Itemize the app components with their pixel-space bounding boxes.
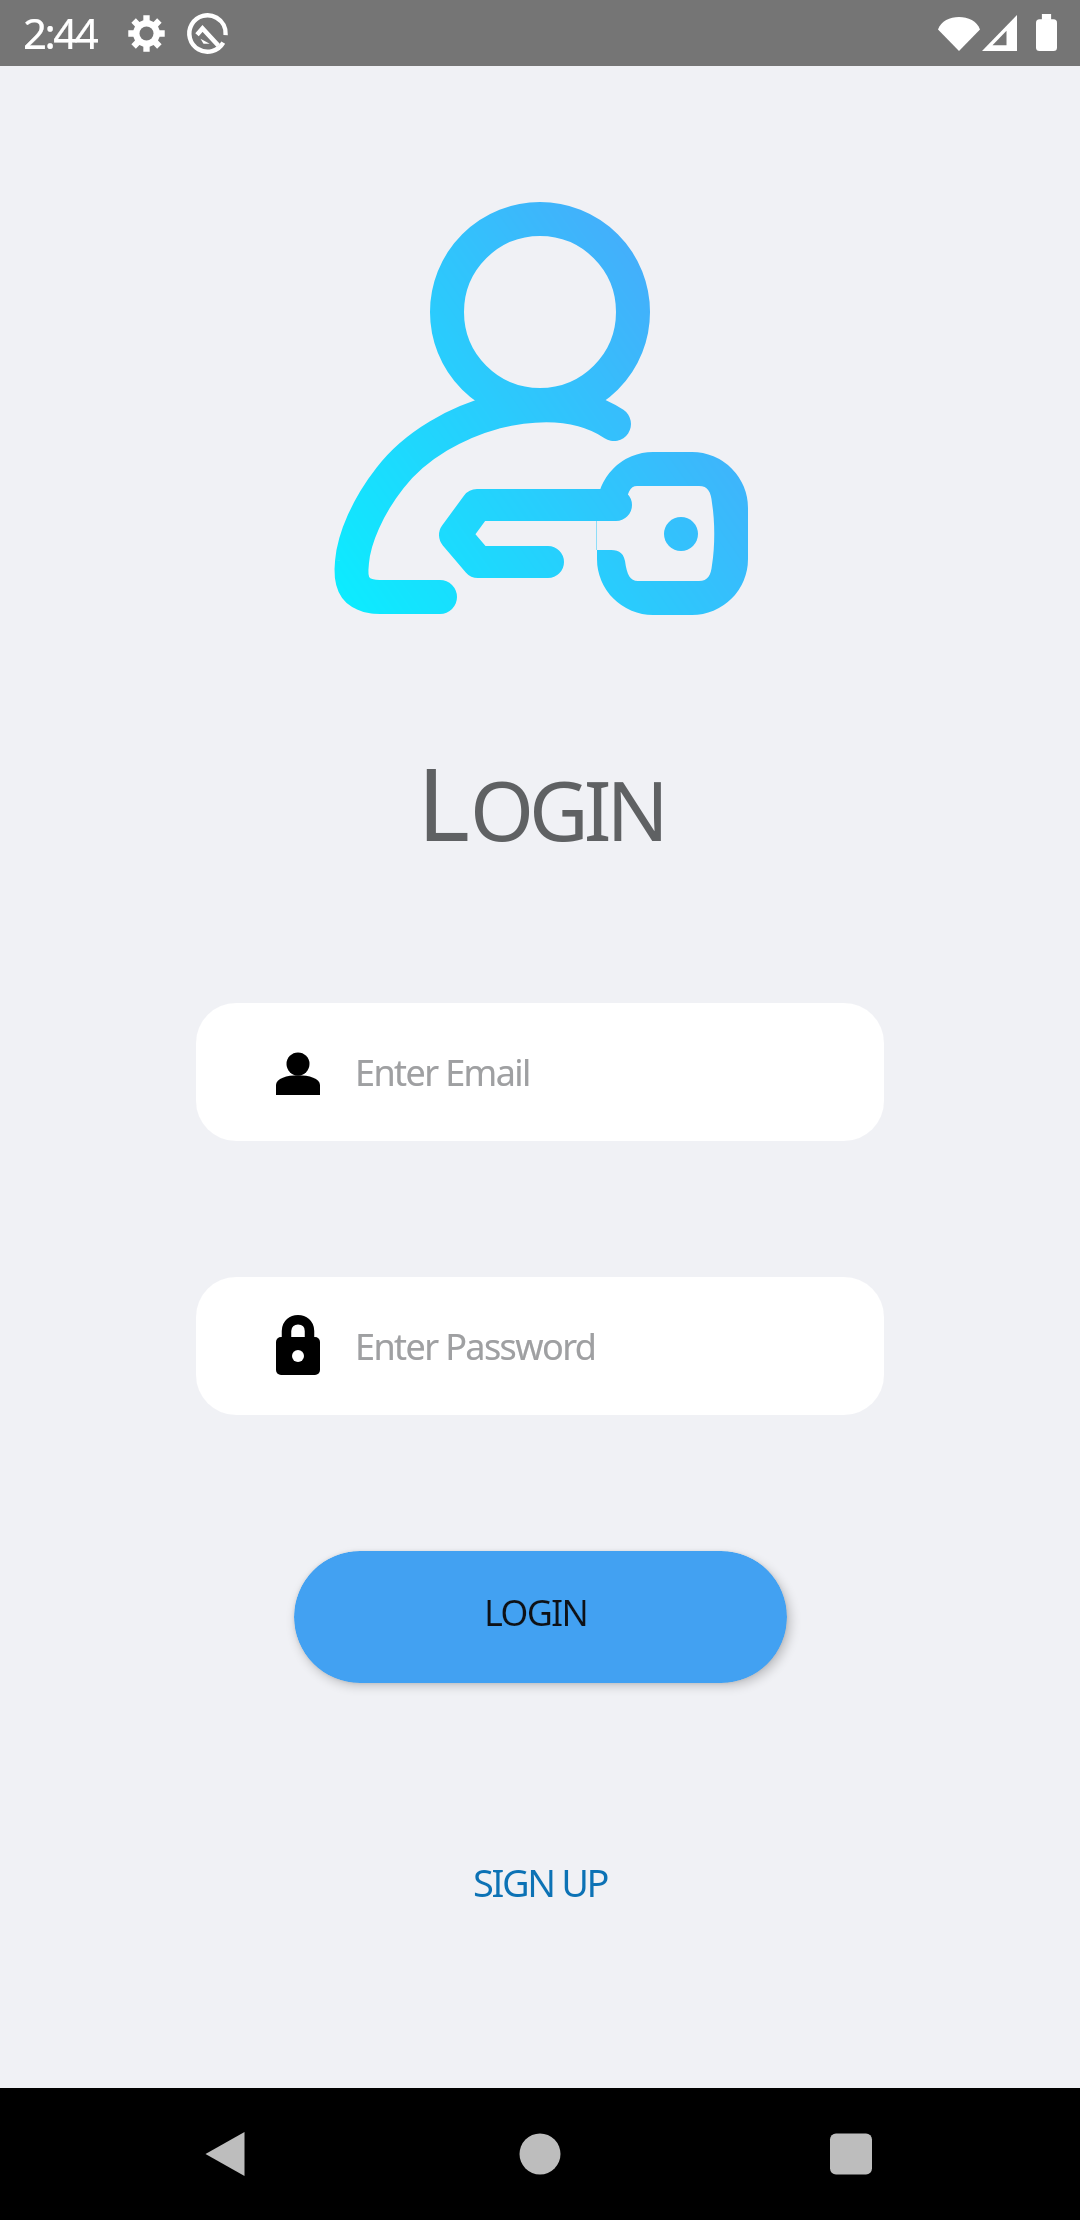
button[interactable]: Back: [155, 2088, 295, 2220]
other: Settings: [126, 13, 167, 54]
button[interactable]: LOGIN: [294, 1551, 787, 1683]
staticText: OGIN: [470, 753, 664, 865]
other: Android version: [187, 13, 228, 54]
staticText: LOGIN: [484, 1588, 588, 1637]
staticText: L: [417, 733, 470, 871]
button[interactable]: Home: [470, 2088, 610, 2220]
button[interactable]: Enter Password: [196, 1277, 884, 1415]
staticText: SIGN UP: [473, 1856, 608, 1908]
staticText: Enter Password: [355, 1322, 596, 1371]
staticText: 2:44: [23, 4, 97, 61]
button[interactable]: SIGN UP: [445, 1840, 636, 1924]
button[interactable]: Enter Email: [196, 1003, 884, 1141]
staticText: Enter Email: [355, 1048, 530, 1097]
button[interactable]: Recent apps: [781, 2088, 921, 2220]
